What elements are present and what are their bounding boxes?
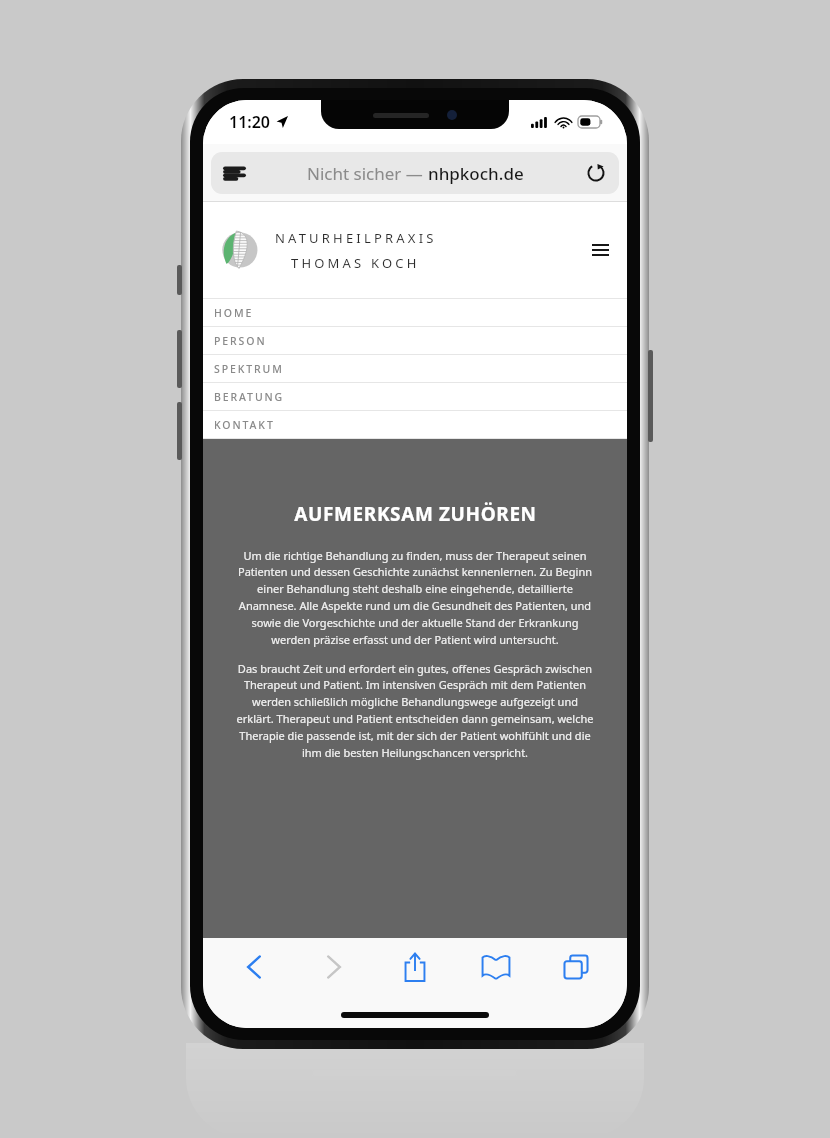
button[interactable]: KONTAKT xyxy=(203,411,627,438)
button[interactable]: Reload xyxy=(573,152,619,194)
staticText: NATURHEILPRAXIS xyxy=(275,229,437,247)
staticText: nhpkoch.de xyxy=(428,162,524,185)
button[interactable]: Bookmarks xyxy=(466,941,526,993)
button[interactable]: HOME xyxy=(203,299,627,326)
staticText: SPEKTRUM xyxy=(214,362,284,376)
staticText: THOMAS KOCH xyxy=(291,254,420,272)
staticText: PERSON xyxy=(214,334,267,348)
staticText: BERATUNG xyxy=(214,390,285,404)
staticText: Das braucht Zeit und erfordert ein gutes… xyxy=(233,661,597,761)
staticText: 11:20 xyxy=(229,111,271,133)
button[interactable]: Reader view xyxy=(211,152,619,194)
button[interactable]: Share xyxy=(385,941,445,993)
button[interactable]: SPEKTRUM xyxy=(203,355,627,382)
button[interactable]: PERSON xyxy=(203,327,627,354)
button[interactable]: Reader view xyxy=(211,152,257,194)
button[interactable]: Forward xyxy=(304,941,364,993)
button[interactable]: Back xyxy=(224,941,284,993)
button[interactable]: BERATUNG xyxy=(203,383,627,410)
staticText: KONTAKT xyxy=(214,418,275,432)
button[interactable]: Tabs xyxy=(546,941,606,993)
staticText: Nicht sicher — xyxy=(307,162,428,185)
staticText: HOME xyxy=(214,306,254,320)
button[interactable]: Open menu xyxy=(583,233,617,267)
staticText: AUFMERKSAM ZUHÖREN xyxy=(294,501,537,527)
staticText: Um die richtige Behandlung zu finden, mu… xyxy=(233,548,597,648)
